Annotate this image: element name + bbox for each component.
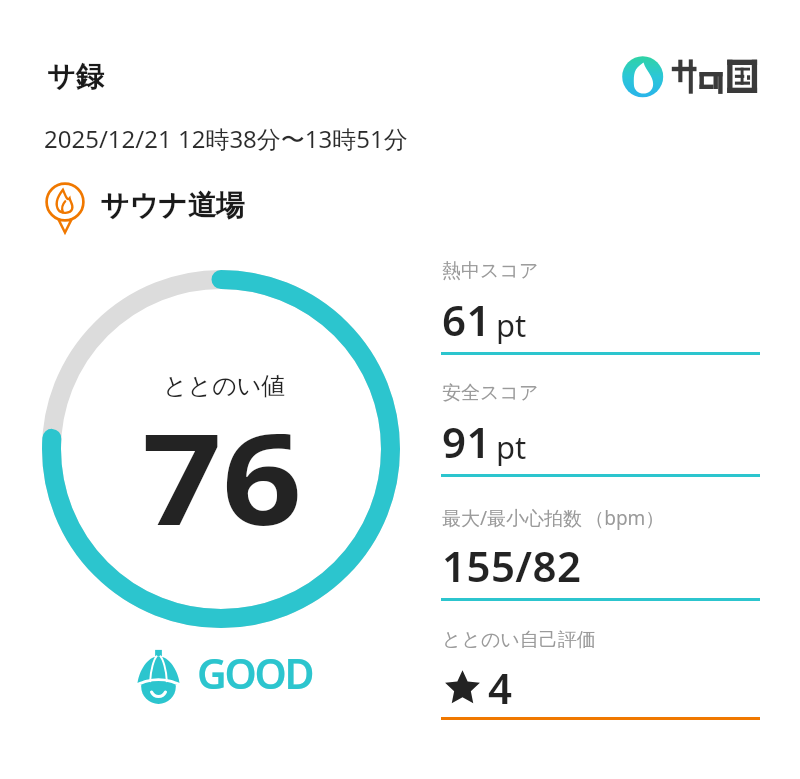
button[interactable]: 熱中スコア [441,253,760,358]
staticText: 155/82 [442,537,582,594]
staticText: 76 [142,390,303,562]
staticText: サ録 [47,59,104,94]
staticText: 最大/最小心拍数 （bpm） [442,505,665,531]
button[interactable]: 安全スコア [441,375,760,480]
button[interactable]: 最大/最小心拍数 （bpm） [441,499,760,604]
button[interactable]: ととのい自己評価 [441,622,760,723]
staticText: pt [496,426,527,468]
staticText: サウナ道場 [100,188,245,224]
staticText: pt [496,304,527,346]
staticText: 安全スコア [442,381,539,405]
staticText: 熱中スコア [442,259,539,283]
staticText: ととのい値 [163,371,286,401]
staticText: 61 [442,291,491,348]
staticText: 2025/12/21 12時38分〜13時51分 [44,122,408,155]
button[interactable]: サの国 logo [620,54,760,98]
button[interactable]: サウナ道場 [42,179,245,233]
staticText: ととのい自己評価 [442,628,596,652]
button[interactable]: GOOD [136,647,313,703]
staticText: 4 [488,659,513,716]
staticText: 91 [442,413,491,470]
staticText: GOOD [197,645,313,701]
